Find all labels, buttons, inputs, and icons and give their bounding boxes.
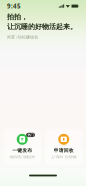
staticText: 9:45 [7,2,21,10]
staticText: 让沉睡的好物活起来。 [7,22,77,31]
staticText: 上门取件 [51,155,63,159]
button[interactable]: 热门 [3,129,41,165]
staticText: 热门 [27,133,33,137]
staticText: 智能定价 [23,155,35,159]
staticText: 拍照识别 [10,155,22,159]
staticText: 一键发布 [12,147,32,153]
staticText: 申请回收 [54,147,74,153]
button[interactable]: 申请回收 [45,129,82,165]
staticText: 闲置 / 轻松赚钱包 [7,34,38,40]
staticText: 拍拍， [7,12,28,21]
staticText: 当天到账 [64,155,76,159]
